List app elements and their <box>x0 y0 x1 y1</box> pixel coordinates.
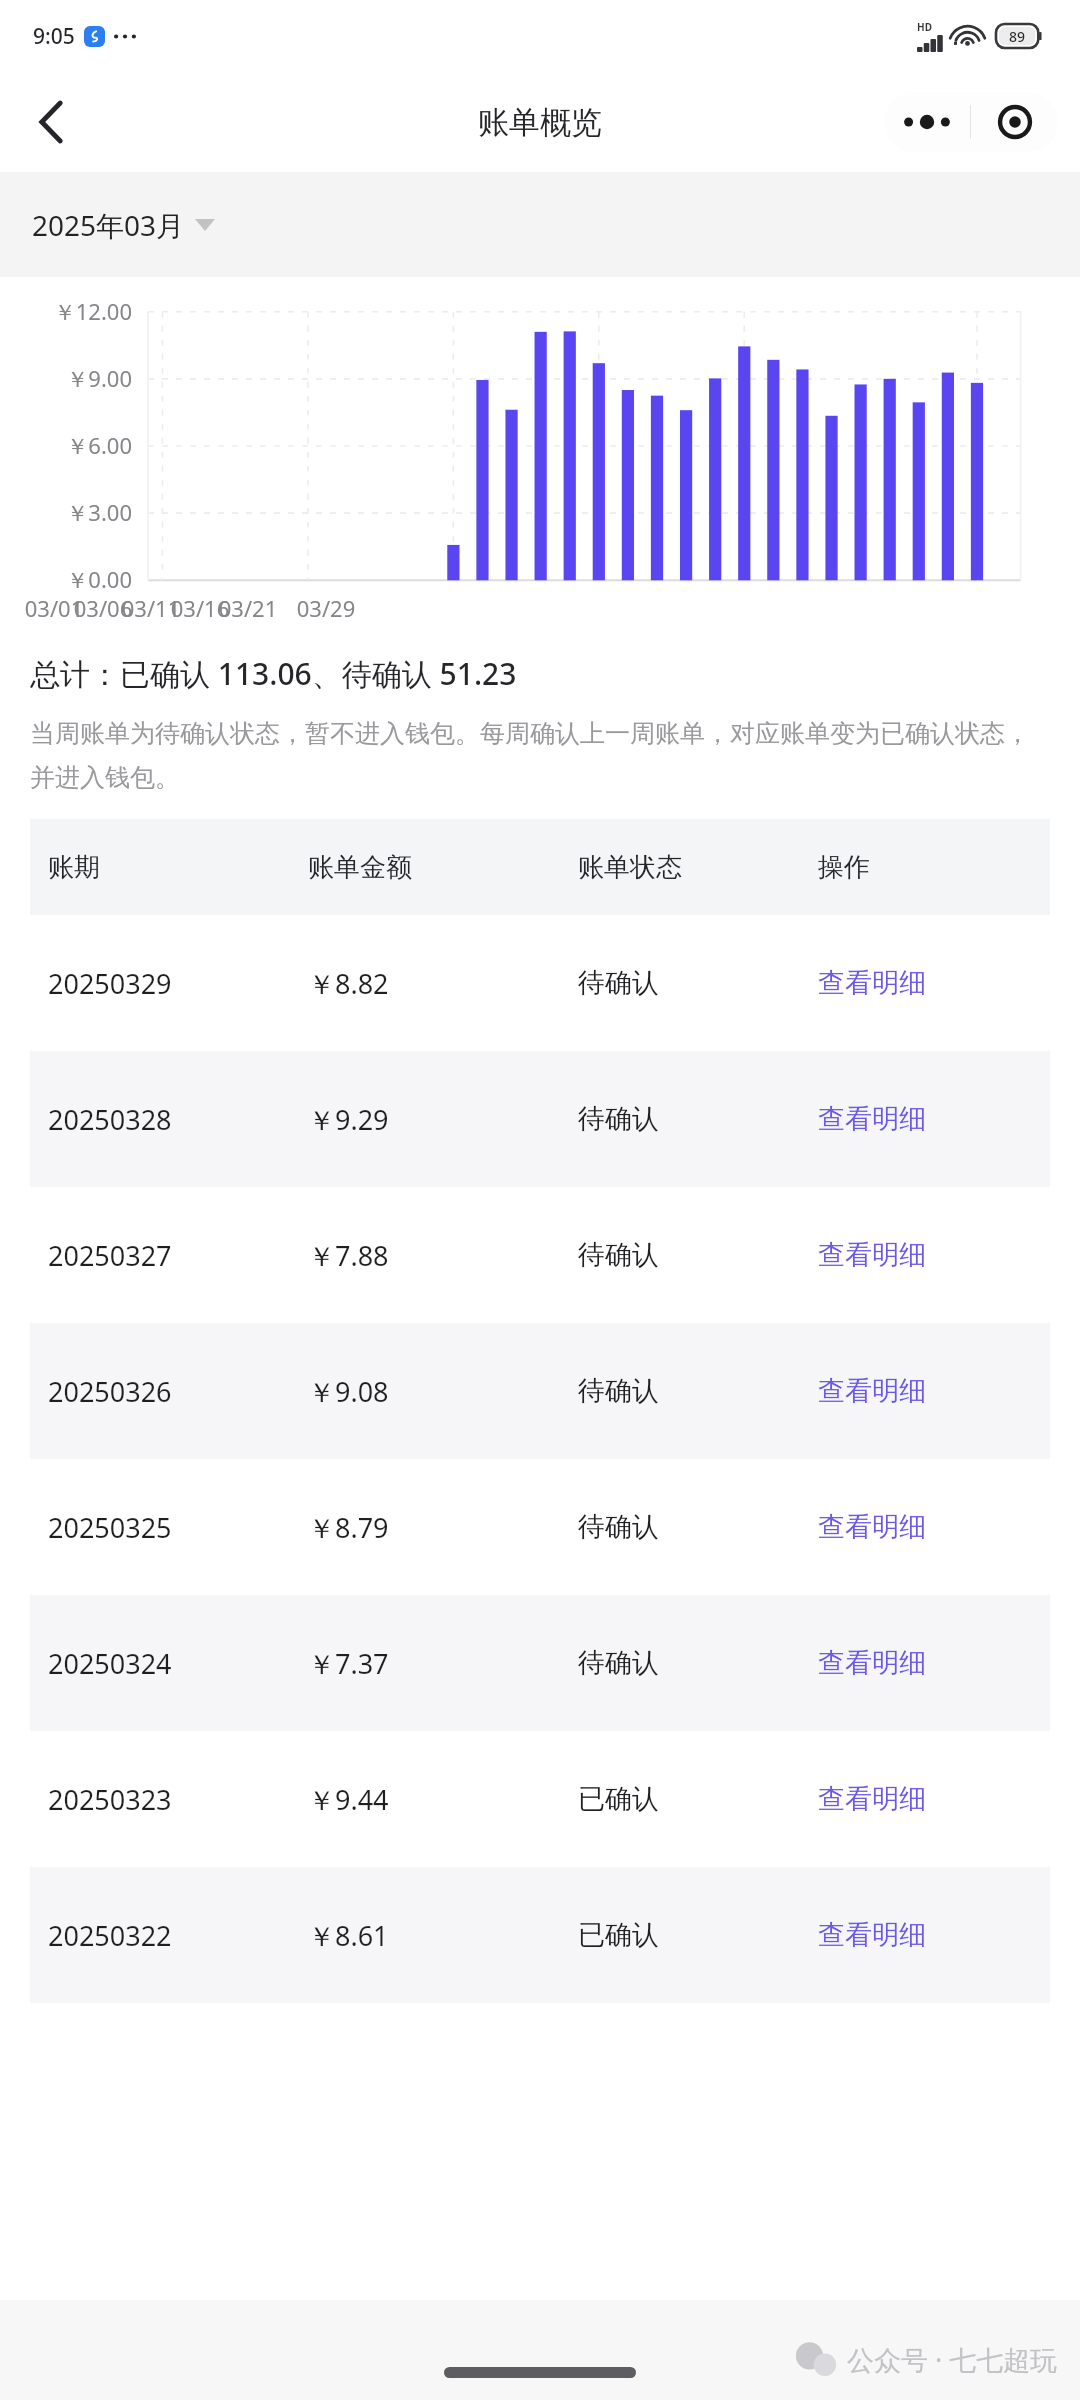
staticText: 待确认 <box>578 1646 659 1680</box>
button[interactable]: 20250324 <box>30 1595 1050 1731</box>
button[interactable]: 20250325 <box>30 1459 1050 1595</box>
staticText: 总计：已确认 113.06、待确认 51.23 <box>30 653 517 694</box>
staticText: 20250328 <box>48 1101 172 1138</box>
staticText: 03/29 <box>286 593 366 623</box>
staticText: 89 <box>1009 27 1026 46</box>
button[interactable]: 20250323 <box>30 1731 1050 1867</box>
staticText: 20250327 <box>48 1237 172 1274</box>
staticText: 待确认 <box>578 1510 659 1544</box>
staticText: 查看明细 <box>818 966 926 1000</box>
staticText: 03/11 <box>111 593 191 623</box>
button[interactable]: 20250326 <box>30 1323 1050 1459</box>
staticText: 20250322 <box>48 1917 172 1954</box>
staticText: 公众号 · 七七超玩 <box>847 2341 1058 2378</box>
staticText: ￥12.00 <box>0 296 132 326</box>
staticText: 查看明细 <box>818 1374 926 1408</box>
staticText: 待确认 <box>578 1102 659 1136</box>
staticText: 03/01 <box>14 593 94 623</box>
staticText: 账期 <box>48 851 100 884</box>
staticText: 当周账单为待确认状态，暂不进入钱包。每周确认上一周账单，对应账单变为已确认状态，… <box>30 718 1050 793</box>
staticText: 待确认 <box>578 1374 659 1408</box>
staticText: 查看明细 <box>818 1918 926 1952</box>
staticText: 9:05 <box>33 22 75 51</box>
staticText: 待确认 <box>578 966 659 1000</box>
staticText: 03/16 <box>160 593 240 623</box>
staticText: 已确认 <box>578 1782 659 1816</box>
button[interactable]: 20250328 <box>30 1051 1050 1187</box>
staticText: 账单金额 <box>308 851 412 884</box>
staticText: ￥8.82 <box>308 965 389 1002</box>
staticText: ￥9.29 <box>308 1101 389 1138</box>
staticText: ￥7.88 <box>308 1237 389 1274</box>
staticText: ￥9.08 <box>308 1373 389 1410</box>
staticText: ￥0.00 <box>0 564 132 594</box>
staticText: ￥6.00 <box>0 430 132 460</box>
button[interactable]: Back <box>20 91 82 153</box>
staticText: 已确认 <box>578 1918 659 1952</box>
button[interactable]: More <box>884 92 970 152</box>
staticText: ￥8.79 <box>308 1509 389 1546</box>
staticText: 20250323 <box>48 1781 172 1818</box>
staticText: ￥9.44 <box>308 1781 389 1818</box>
staticText: 20250325 <box>48 1509 172 1546</box>
staticText: 账单概览 <box>478 103 602 142</box>
staticText: 03/21 <box>208 593 288 623</box>
staticText: 查看明细 <box>818 1782 926 1816</box>
staticText: 操作 <box>818 851 870 884</box>
button[interactable]: 20250327 <box>30 1187 1050 1323</box>
button[interactable]: 20250322 <box>30 1867 1050 2003</box>
staticText: 20250326 <box>48 1373 172 1410</box>
staticText: 查看明细 <box>818 1646 926 1680</box>
staticText: 查看明细 <box>818 1102 926 1136</box>
staticText: ￥3.00 <box>0 497 132 527</box>
staticText: 待确认 <box>578 1238 659 1272</box>
staticText: 查看明细 <box>818 1510 926 1544</box>
staticText: ￥7.37 <box>308 1645 389 1682</box>
staticText: 20250324 <box>48 1645 172 1682</box>
staticText: 20250329 <box>48 965 172 1002</box>
button[interactable]: 20250329 <box>30 915 1050 1051</box>
staticText: 查看明细 <box>818 1238 926 1272</box>
button[interactable]: 2025年03月 <box>28 196 219 254</box>
staticText: ￥9.00 <box>0 363 132 393</box>
staticText: 账单状态 <box>578 851 682 884</box>
staticText: 03/06 <box>63 593 143 623</box>
staticText: ￥8.61 <box>308 1917 389 1954</box>
staticText: HD <box>917 20 932 34</box>
staticText: 2025年03月 <box>32 206 185 244</box>
button[interactable]: Close <box>971 92 1058 152</box>
